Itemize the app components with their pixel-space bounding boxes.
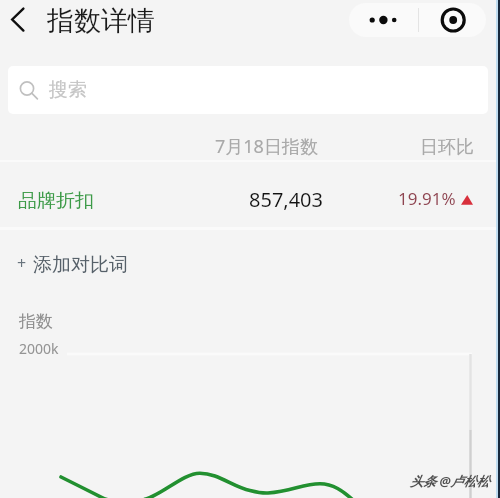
staticText: 指数	[19, 311, 53, 332]
button[interactable]: Back	[2, 2, 38, 38]
staticText: 指数详情	[47, 4, 155, 38]
staticText: 日环比	[420, 136, 474, 159]
button[interactable]: More options	[349, 3, 418, 37]
staticText: 头条 @卢松松	[410, 472, 490, 490]
button[interactable]: +	[0, 230, 500, 282]
staticText: +	[17, 252, 27, 274]
button[interactable]: 品牌折扣	[0, 163, 500, 227]
staticText: 品牌折扣	[18, 189, 94, 213]
button[interactable]: 搜索	[8, 66, 488, 114]
staticText: 添加对比词	[33, 253, 128, 277]
staticText: 搜索	[49, 78, 87, 102]
button[interactable]: Close mini program	[418, 3, 486, 37]
staticText: 2000k	[19, 339, 59, 358]
staticText: 857,403	[249, 186, 323, 213]
staticText: 7月18日指数	[215, 134, 318, 159]
staticText: 19.91%	[398, 187, 456, 210]
